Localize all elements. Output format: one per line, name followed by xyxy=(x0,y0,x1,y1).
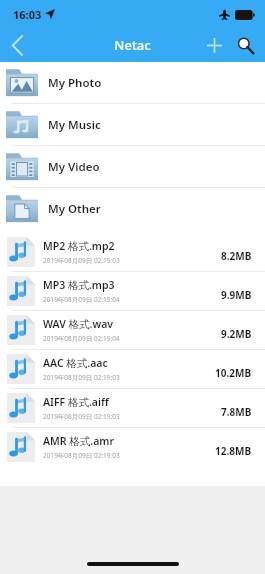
staticText: 9.9MB xyxy=(221,288,252,302)
staticText: 2019年08月09日 02:19:03 xyxy=(43,256,120,265)
staticText: 9.2MB xyxy=(221,327,252,341)
staticText: My Music xyxy=(48,117,101,133)
staticText: 2019年08月09日 02:19:03 xyxy=(43,412,120,421)
staticText: My Photo xyxy=(48,75,102,91)
button[interactable]: My Music xyxy=(0,104,265,146)
button[interactable]: MP3 格式.mp3 xyxy=(0,272,265,311)
staticText: 2019年08月09日 02:19:03 xyxy=(43,373,120,382)
staticText: 2019年08月09日 02:19:04 xyxy=(43,334,120,343)
button[interactable]: My Other xyxy=(0,188,265,229)
staticText: My Other xyxy=(48,201,101,217)
staticText: My Video xyxy=(48,159,100,175)
staticText: 2019年08月09日 02:19:03 xyxy=(43,451,120,460)
staticText: 7.8MB xyxy=(221,405,252,419)
button[interactable]: Add xyxy=(199,30,229,60)
staticText: 16:03 xyxy=(13,7,42,22)
staticText: WAV 格式.wav xyxy=(43,317,114,331)
staticText: 10.2MB xyxy=(215,366,252,380)
button[interactable]: AIFF 格式.aiff xyxy=(0,389,265,428)
button[interactable]: Search xyxy=(229,29,261,61)
button[interactable]: AMR 格式.amr xyxy=(0,428,265,466)
staticText: MP3 格式.mp3 xyxy=(43,278,115,292)
button[interactable]: AAC 格式.aac xyxy=(0,350,265,389)
staticText: AMR 格式.amr xyxy=(43,434,114,448)
staticText: 8.2MB xyxy=(221,249,252,263)
button[interactable]: My Photo xyxy=(0,62,265,104)
button[interactable]: Back xyxy=(0,28,34,62)
staticText: MP2 格式.mp2 xyxy=(43,239,115,253)
staticText: AIFF 格式.aiff xyxy=(43,395,109,409)
staticText: AAC 格式.aac xyxy=(43,356,108,370)
button[interactable]: WAV 格式.wav xyxy=(0,311,265,350)
staticText: Netac xyxy=(114,36,151,54)
button[interactable]: My Video xyxy=(0,146,265,188)
button[interactable]: MP2 格式.mp2 xyxy=(0,233,265,272)
staticText: 12.8MB xyxy=(215,444,252,458)
staticText: 2019年08月09日 02:19:04 xyxy=(43,295,120,304)
